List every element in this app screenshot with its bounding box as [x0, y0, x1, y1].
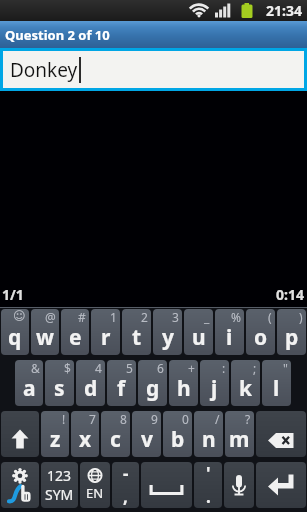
staticText: z — [50, 425, 61, 454]
button[interactable]: 0 — [163, 411, 192, 457]
staticText: 21:34 — [266, 1, 302, 20]
button[interactable]: ? — [225, 411, 254, 457]
staticText: $ — [64, 360, 71, 376]
staticText: 8 — [120, 411, 127, 427]
staticText: v — [141, 425, 153, 454]
staticText: EN — [86, 484, 104, 502]
staticText: t — [132, 323, 142, 352]
button[interactable]: 2 — [122, 309, 151, 355]
staticText: w — [36, 323, 54, 352]
staticText: o — [254, 323, 268, 352]
staticText: b — [171, 425, 185, 454]
staticText: g — [146, 374, 160, 403]
staticText: y — [162, 323, 174, 352]
button[interactable]: # — [61, 309, 89, 355]
staticText: : — [222, 360, 226, 376]
staticText: ( — [268, 309, 272, 325]
staticText: d — [84, 374, 98, 403]
button[interactable]: $ — [45, 360, 74, 406]
staticText: + — [188, 360, 195, 376]
staticText: ; — [253, 360, 257, 376]
staticText: e — [69, 323, 82, 352]
staticText: 2 — [141, 309, 148, 325]
staticText: / — [215, 411, 220, 427]
button[interactable]: " — [262, 360, 291, 406]
staticText: 0 — [182, 411, 189, 427]
button[interactable]: : — [200, 360, 229, 406]
staticText: @ — [45, 309, 56, 325]
staticText: & — [31, 360, 40, 376]
staticText: ' — [206, 462, 211, 485]
staticText: . — [206, 485, 211, 508]
staticText: 4 — [95, 360, 102, 376]
button[interactable]: ☺ — [1, 309, 29, 355]
button[interactable]: 4 — [76, 360, 105, 406]
staticText: - — [123, 462, 129, 485]
button[interactable]: Voice input — [224, 462, 254, 508]
staticText: ? — [245, 411, 251, 427]
staticText: 1 — [110, 309, 117, 325]
staticText: j — [211, 374, 218, 403]
staticText: % — [231, 309, 241, 325]
button[interactable]: Enter — [256, 462, 306, 508]
button[interactable]: + — [169, 360, 198, 406]
button[interactable]: Settings — [1, 462, 39, 508]
staticText: i — [226, 323, 233, 352]
staticText: u — [192, 323, 206, 352]
button[interactable]: Donkey — [3, 51, 304, 88]
staticText: f — [117, 374, 126, 403]
button[interactable]: 1 — [91, 309, 120, 355]
button[interactable]: ' — [194, 462, 222, 508]
staticText: , — [123, 485, 128, 508]
staticText: SYM — [45, 485, 74, 504]
button[interactable]: ; — [231, 360, 260, 406]
staticText: 7 — [89, 411, 96, 427]
button[interactable]: Change language — [80, 462, 110, 508]
staticText: a — [23, 374, 36, 403]
button[interactable]: 5 — [107, 360, 136, 406]
button[interactable]: Shift — [1, 411, 39, 457]
staticText: l — [273, 374, 280, 403]
staticText: k — [239, 374, 253, 403]
staticText: ) — [299, 309, 303, 325]
staticText: Question 2 of 10 — [5, 26, 110, 44]
button[interactable]: ) — [277, 309, 306, 355]
button[interactable]: 7 — [71, 411, 99, 457]
staticText: r — [101, 323, 111, 352]
button[interactable]: 6 — [138, 360, 167, 406]
staticText: # — [78, 309, 86, 325]
staticText: q — [8, 323, 22, 352]
staticText: ☺ — [13, 309, 26, 323]
button[interactable]: - — [112, 462, 139, 508]
button[interactable]: & — [15, 360, 43, 406]
staticText: _ — [204, 309, 210, 325]
button[interactable]: % — [215, 309, 244, 355]
button[interactable]: ( — [246, 309, 275, 355]
staticText: ! — [62, 411, 66, 427]
staticText: c — [110, 425, 121, 454]
staticText: x — [79, 425, 92, 454]
staticText: p — [285, 323, 299, 352]
button[interactable]: 123 — [41, 462, 78, 508]
staticText: 9 — [151, 411, 158, 427]
staticText: " — [283, 360, 288, 376]
staticText: 123 — [47, 466, 72, 485]
staticText: 0:14 — [276, 285, 304, 304]
button[interactable]: 3 — [153, 309, 182, 355]
button[interactable]: Backspace — [256, 411, 306, 457]
button[interactable]: ! — [41, 411, 69, 457]
button[interactable]: Space — [141, 462, 192, 508]
staticText: h — [177, 374, 191, 403]
staticText: Donkey — [10, 57, 78, 83]
button[interactable]: @ — [31, 309, 59, 355]
staticText: n — [202, 425, 216, 454]
button[interactable]: 8 — [101, 411, 130, 457]
staticText: s — [54, 374, 65, 403]
staticText: 3 — [172, 309, 179, 325]
staticText: 6 — [157, 360, 164, 376]
staticText: 1/1 — [2, 285, 24, 304]
button[interactable]: 9 — [132, 411, 161, 457]
button[interactable]: _ — [184, 309, 213, 355]
button[interactable]: / — [194, 411, 223, 457]
staticText: m — [229, 425, 250, 454]
